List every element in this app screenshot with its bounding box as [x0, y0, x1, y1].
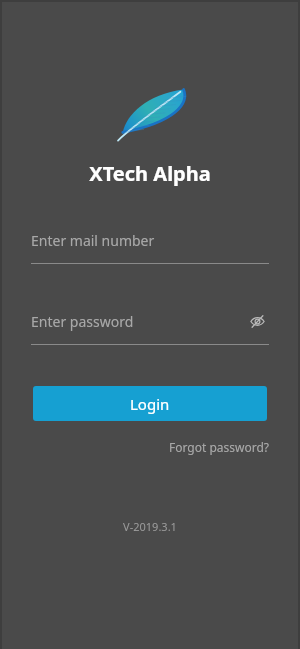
staticText: Enter password	[31, 312, 245, 331]
staticText: XTech Alpha	[0, 160, 300, 187]
button[interactable]: Enter mail number	[31, 225, 269, 264]
staticText: V-2019.3.1	[0, 519, 300, 534]
button[interactable]: Show password	[245, 309, 269, 333]
button[interactable]: Forgot password?	[167, 437, 272, 457]
button[interactable]: Enter password	[31, 306, 269, 345]
staticText: Enter mail number	[31, 231, 155, 250]
staticText: Forgot password?	[169, 439, 270, 455]
staticText: Login	[130, 394, 170, 414]
button[interactable]: Login	[33, 386, 267, 421]
